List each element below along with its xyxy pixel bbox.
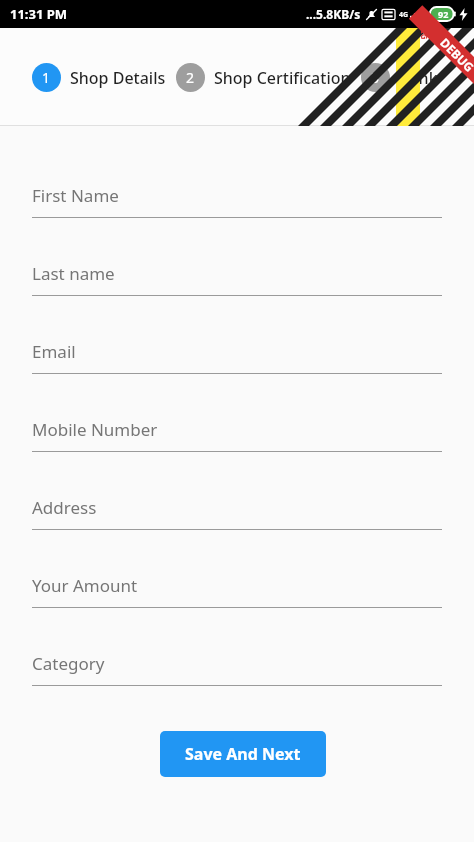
button[interactable]: Your Amount (0, 563, 474, 641)
button[interactable]: Mobile Number (0, 407, 474, 485)
button[interactable]: Save And Next (160, 731, 326, 777)
staticText: 2 (186, 68, 195, 87)
staticText: Mobile Number (32, 418, 158, 441)
staticText: Save And Next (185, 743, 301, 765)
staticText: Your Amount (32, 574, 138, 597)
staticText: Last name (32, 262, 115, 285)
button[interactable]: 1 (32, 63, 166, 92)
staticText: Category (32, 652, 105, 675)
staticText: Shop Details (70, 67, 166, 89)
staticText: RIGHT OVERFLOWED BY 31 PIXELS (418, 25, 429, 45)
staticText: 92 (438, 8, 449, 20)
staticText: First Name (32, 184, 119, 207)
button[interactable]: First Name (0, 173, 474, 251)
button[interactable]: Last name (0, 251, 474, 329)
staticText: 4G (399, 10, 409, 20)
staticText: Bank (399, 67, 438, 89)
staticText: Email (32, 340, 76, 363)
staticText: ...5.8KB/s (306, 6, 361, 22)
button[interactable]: Category (0, 641, 474, 719)
staticText: 3 (371, 68, 380, 87)
staticText: Address (32, 496, 97, 519)
staticText: 11:31 PM (10, 5, 68, 23)
button[interactable]: 2 (176, 63, 351, 92)
staticText: 1 (42, 68, 51, 87)
staticText: DEBUG (437, 34, 474, 75)
button[interactable]: Address (0, 485, 474, 563)
button[interactable]: 3 (361, 63, 438, 92)
button[interactable]: Email (0, 329, 474, 407)
staticText: Shop Certification (214, 67, 351, 89)
